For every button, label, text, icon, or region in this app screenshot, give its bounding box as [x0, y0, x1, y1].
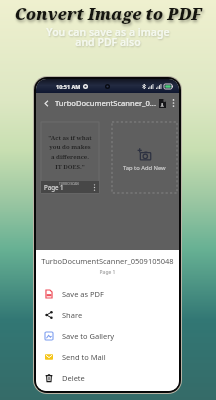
staticText: Save to Gallery	[62, 331, 115, 341]
staticText: 10:51 AM	[56, 83, 81, 90]
button[interactable]: Tap to Add New	[112, 122, 177, 193]
button[interactable]: Export PDF	[156, 97, 168, 109]
button[interactable]: Share	[36, 304, 179, 325]
button[interactable]: Save as PDF	[36, 283, 179, 304]
staticText: You can save as a image and PDF also	[0, 25, 216, 49]
staticText: Tap to Add New	[123, 164, 166, 172]
button[interactable]: "Act as if what you do makes a differenc…	[41, 122, 99, 193]
staticText: Page 1	[36, 269, 179, 276]
button[interactable]: Send to Mail	[36, 346, 179, 367]
staticText: Delete	[62, 373, 85, 383]
staticText: "Act as if what you do makes a differenc…	[48, 134, 92, 171]
staticText: Save as PDF	[62, 289, 104, 299]
staticText: TurboDocumentScanner_0509105048	[36, 256, 179, 266]
button[interactable]: Save to Gallery	[36, 325, 179, 346]
staticText: Share	[62, 310, 83, 320]
staticText: Convert Image to PDF	[0, 3, 216, 25]
staticText: Send to Mail	[62, 352, 106, 362]
button[interactable]: Delete	[36, 367, 179, 388]
staticText: TurboDocumentScanner_0...	[55, 98, 156, 108]
button[interactable]: More options	[173, 98, 174, 108]
staticText: Page 1	[44, 183, 64, 191]
staticText: TURBO SCAN	[59, 182, 79, 186]
button[interactable]: Back	[40, 97, 52, 109]
